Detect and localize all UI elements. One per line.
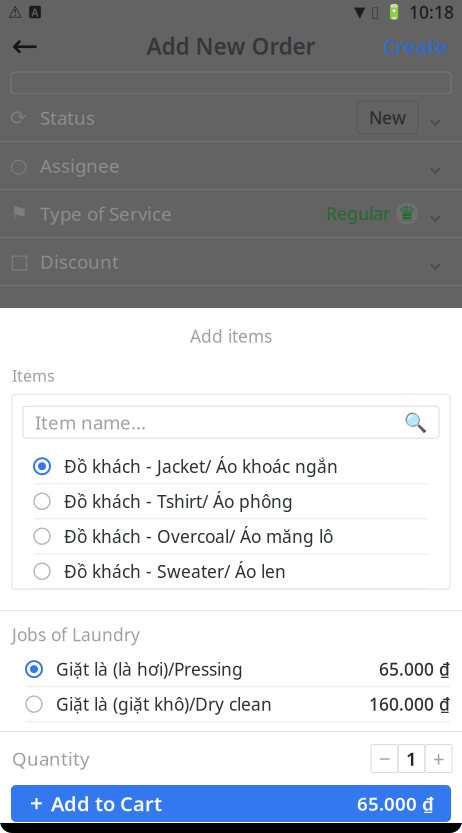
button[interactable]: + [11,785,451,822]
staticText: ⌄ [425,152,445,179]
button[interactable]: Giặt là (giặt khô)/Dry clean [0,687,462,722]
staticText: Status [40,105,95,130]
staticText: 10:18 [409,0,454,23]
staticText: Đồ khách - Overcoal/ Áo măng lô [64,525,333,548]
staticText: 65.000 ₫ [379,658,450,681]
staticText: 65.000 ₫ [357,791,434,816]
staticText: 1 [406,746,417,771]
staticText: Đồ khách - Sweater/ Áo len [64,560,286,583]
staticText: □ [10,250,29,273]
staticText: Đồ khách - Jacket/ Áo khoác ngắn [64,455,338,478]
staticText: + [30,788,43,818]
staticText: Quantity [12,746,90,771]
staticText: Item name... [35,410,146,435]
staticText: ⚑ [10,202,28,225]
staticText: Type of Service [40,201,172,226]
button[interactable]: Đồ khách - Overcoal/ Áo măng lô [12,519,450,554]
staticText: ⌄ [425,200,445,227]
button[interactable]: Back [0,24,50,68]
button[interactable]: Đồ khách - Tshirt/ Áo phông [12,484,450,519]
button[interactable]: Decrease quantity [371,744,398,772]
staticText: Regular [326,202,390,225]
staticText: Add items [190,324,272,347]
staticText: Items [12,365,55,386]
staticText: ← [11,28,38,64]
staticText: Jobs of Laundry [12,623,140,646]
staticText: ⌄ [425,104,445,131]
staticText: Assignee [40,153,120,178]
staticText: ○ [10,154,27,177]
staticText: 160.000 ₫ [369,693,450,716]
staticText: ▼ [354,4,365,20]
staticText: ▯ [371,4,379,20]
staticText: 🔍 [404,412,427,433]
staticText: ⟳ [10,106,27,129]
staticText: Giặt là (giặt khô)/Dry clean [56,693,272,716]
button[interactable]: Giặt là (là hơi)/Pressing [0,652,462,687]
staticText: − [378,744,390,773]
staticText: Add to Cart [51,790,162,817]
staticText: 🅰 [28,5,42,19]
staticText: New [369,106,406,129]
staticText: ♛ [398,202,416,225]
staticText: Create [383,33,448,59]
button[interactable]: Increase quantity [425,744,452,772]
button[interactable]: Đồ khách - Jacket/ Áo khoác ngắn [12,449,450,484]
staticText: ⚠ [8,3,22,21]
staticText: Discount [40,249,119,274]
staticText: Giặt là (là hơi)/Pressing [56,658,243,681]
button[interactable]: Đồ khách - Sweater/ Áo len [12,554,450,589]
staticText: ⌄ [425,248,445,275]
staticText: Đồ khách - Tshirt/ Áo phông [64,490,293,513]
button[interactable]: Create [369,24,462,68]
staticText: 🔋 [385,4,403,20]
staticText: Add New Order [146,31,315,61]
staticText: + [432,744,444,773]
